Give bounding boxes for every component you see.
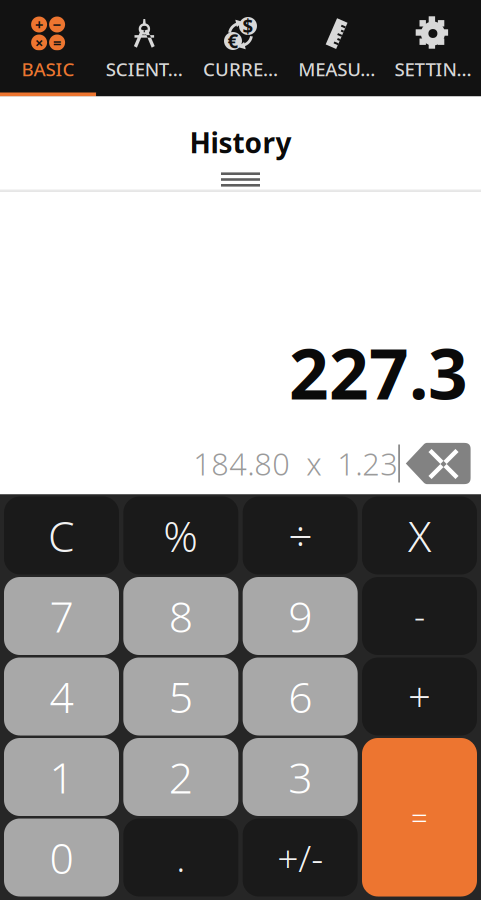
button[interactable]: +/- <box>243 818 358 896</box>
staticText: + <box>35 15 43 34</box>
staticText: SCIENT… <box>106 57 183 81</box>
staticText: + <box>408 670 431 723</box>
staticText: − <box>53 15 62 34</box>
staticText: SETTIN… <box>394 57 471 81</box>
staticText: +/- <box>277 833 323 882</box>
button[interactable]: 5 <box>123 657 238 735</box>
button[interactable]: 3 <box>243 738 358 816</box>
staticText: 1 <box>49 749 73 805</box>
button[interactable]: SCIENT… <box>96 0 192 96</box>
staticText: X <box>408 507 431 564</box>
button[interactable]: . <box>123 818 238 896</box>
button[interactable]: SETTIN… <box>385 0 481 96</box>
staticText: - <box>414 593 425 639</box>
staticText: 2 <box>169 749 193 805</box>
button[interactable]: 2 <box>123 738 238 816</box>
button[interactable]: X <box>362 496 477 574</box>
staticText: × <box>35 33 43 52</box>
staticText: $ <box>242 14 253 38</box>
staticText: 7 <box>49 588 73 644</box>
staticText: . <box>176 833 185 882</box>
button[interactable]: = <box>362 738 477 896</box>
button[interactable]: + <box>362 657 477 735</box>
staticText: C <box>48 507 75 564</box>
staticText: 0 <box>49 829 73 886</box>
staticText: 3 <box>288 749 312 805</box>
staticText: 4 <box>49 668 73 725</box>
staticText: % <box>163 507 198 564</box>
button[interactable]: 8 <box>123 577 238 655</box>
staticText: 8 <box>169 588 193 644</box>
staticText: 9 <box>288 588 312 644</box>
button[interactable]: % <box>123 496 238 574</box>
staticText: 184.80 x 1.23 <box>193 443 398 484</box>
staticText: = <box>53 33 61 52</box>
staticText: 5 <box>169 668 193 725</box>
button[interactable]: 9 <box>243 577 358 655</box>
button[interactable]: 1 <box>4 738 119 816</box>
staticText: 6 <box>288 668 312 725</box>
button[interactable]: MEASU… <box>289 0 385 96</box>
staticText: BASIC <box>22 57 75 81</box>
staticText: CURRE… <box>203 57 278 81</box>
staticText: = <box>411 798 428 837</box>
button[interactable]: 7 <box>4 577 119 655</box>
button[interactable]: ÷ <box>243 496 358 574</box>
button[interactable]: 6 <box>243 657 358 735</box>
staticText: ÷ <box>288 507 312 564</box>
button[interactable]: - <box>362 577 477 655</box>
button[interactable]: $ <box>192 0 289 96</box>
button[interactable]: Delete <box>405 440 472 486</box>
staticText: € <box>227 29 238 53</box>
button[interactable]: C <box>4 496 119 574</box>
button[interactable]: 4 <box>4 657 119 735</box>
staticText: MEASU… <box>298 57 375 81</box>
staticText: History <box>189 124 291 161</box>
button[interactable]: + <box>0 0 96 96</box>
staticText: 227.3 <box>289 326 468 419</box>
button[interactable]: 0 <box>4 818 119 896</box>
